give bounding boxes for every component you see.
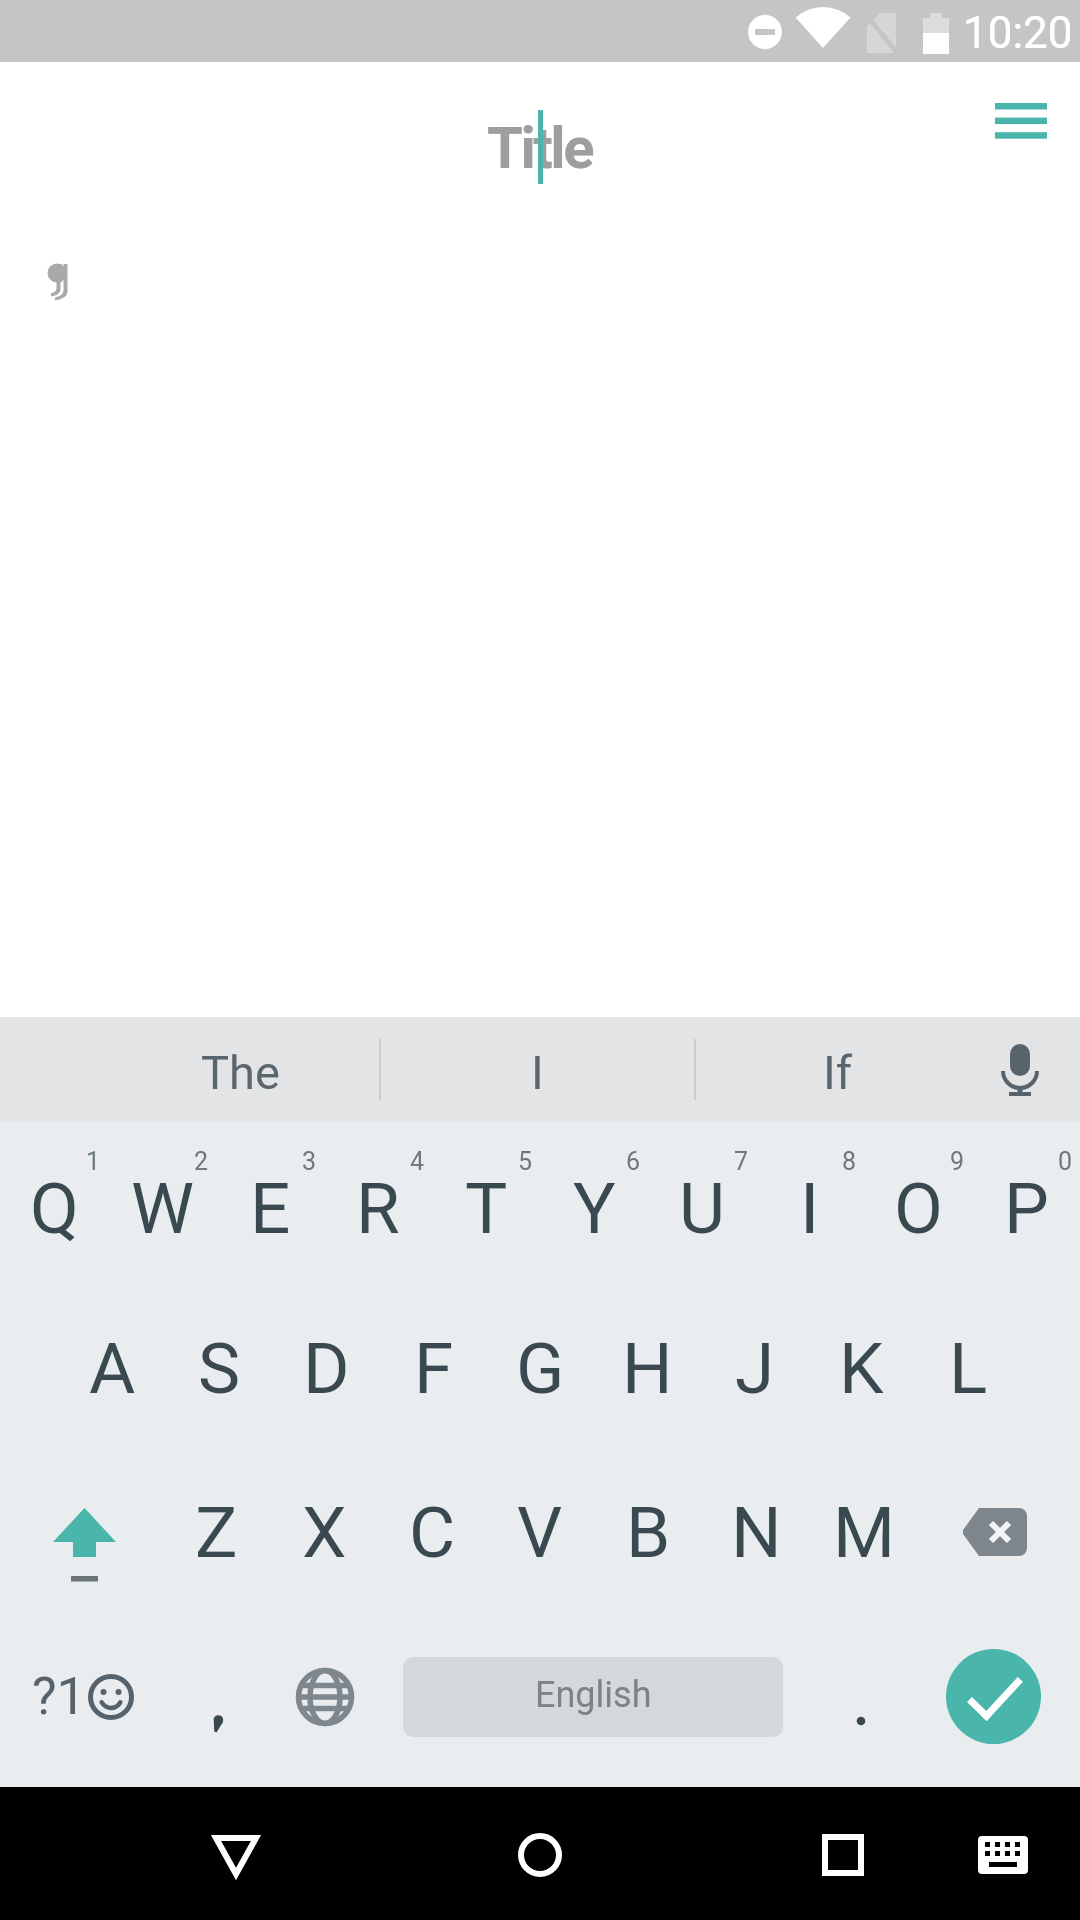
- staticText: X: [302, 1491, 347, 1574]
- button[interactable]: B: [594, 1454, 702, 1620]
- button[interactable]: S: [166, 1288, 273, 1454]
- staticText: English: [535, 1674, 652, 1716]
- staticText: O: [894, 1167, 943, 1250]
- button[interactable]: [946, 1649, 1041, 1744]
- staticText: Q: [30, 1167, 79, 1250]
- staticText: K: [839, 1327, 884, 1410]
- staticText: 0: [1058, 1147, 1073, 1176]
- button[interactable]: English: [403, 1657, 783, 1737]
- button[interactable]: T: [432, 1122, 540, 1288]
- staticText: I: [531, 1045, 544, 1100]
- button[interactable]: X: [270, 1454, 378, 1620]
- button[interactable]: [0, 1787, 360, 1920]
- button[interactable]: [918, 1454, 1080, 1620]
- staticText: I: [800, 1167, 820, 1250]
- staticText: 1: [86, 1147, 101, 1176]
- button[interactable]: U: [648, 1122, 756, 1288]
- staticText: 3: [302, 1147, 317, 1176]
- button[interactable]: The: [0, 1017, 380, 1122]
- staticText: M: [833, 1491, 895, 1574]
- staticText: 6: [626, 1147, 641, 1176]
- button[interactable]: [960, 1017, 1080, 1122]
- button[interactable]: I: [380, 1017, 695, 1122]
- staticText: 5: [518, 1147, 533, 1176]
- staticText: 4: [410, 1147, 425, 1176]
- button[interactable]: [720, 1787, 1080, 1920]
- button[interactable]: V: [486, 1454, 594, 1620]
- staticText: 9: [950, 1147, 965, 1176]
- staticText: H: [622, 1327, 673, 1410]
- staticText: W: [131, 1167, 194, 1250]
- button[interactable]: D: [273, 1288, 380, 1454]
- staticText: R: [356, 1167, 400, 1250]
- staticText: P: [1004, 1167, 1049, 1250]
- staticText: B: [626, 1491, 671, 1574]
- button[interactable]: K: [808, 1288, 915, 1454]
- button[interactable]: O: [864, 1122, 972, 1288]
- staticText: S: [198, 1327, 241, 1410]
- button[interactable]: [275, 1620, 375, 1787]
- button[interactable]: Y: [540, 1122, 648, 1288]
- button[interactable]: A: [58, 1288, 166, 1454]
- button[interactable]: N: [702, 1454, 810, 1620]
- button[interactable]: If: [695, 1017, 980, 1122]
- button[interactable]: [981, 88, 1061, 152]
- button[interactable]: [360, 1787, 720, 1920]
- staticText: N: [731, 1491, 782, 1574]
- staticText: A: [89, 1327, 136, 1410]
- staticText: V: [517, 1491, 563, 1574]
- button[interactable]: [164, 1620, 272, 1787]
- button[interactable]: Q: [0, 1122, 108, 1288]
- staticText: Z: [195, 1491, 238, 1574]
- button[interactable]: L: [915, 1288, 1022, 1454]
- button[interactable]: W: [108, 1122, 216, 1288]
- staticText: E: [250, 1167, 291, 1250]
- button[interactable]: Z: [162, 1454, 270, 1620]
- staticText: C: [409, 1491, 456, 1574]
- button[interactable]: J: [701, 1288, 808, 1454]
- staticText: ?1: [32, 1666, 86, 1727]
- staticText: 7: [734, 1147, 749, 1176]
- staticText: 2: [194, 1147, 209, 1176]
- staticText: If: [823, 1045, 853, 1100]
- button[interactable]: I: [756, 1122, 864, 1288]
- staticText: The: [201, 1045, 280, 1100]
- staticText: J: [735, 1327, 775, 1410]
- button[interactable]: [807, 1620, 915, 1787]
- staticText: U: [679, 1167, 726, 1250]
- staticText: T: [465, 1167, 508, 1250]
- staticText: 10:20: [963, 7, 1073, 59]
- staticText: F: [414, 1327, 454, 1410]
- staticText: G: [516, 1327, 565, 1410]
- staticText: L: [949, 1327, 988, 1410]
- button[interactable]: M: [810, 1454, 918, 1620]
- button[interactable]: [0, 1454, 162, 1620]
- staticText: 8: [842, 1147, 857, 1176]
- staticText: Title: [487, 114, 593, 182]
- button[interactable]: H: [594, 1288, 701, 1454]
- button[interactable]: ?1: [18, 1620, 148, 1787]
- button[interactable]: C: [378, 1454, 486, 1620]
- button[interactable]: P: [972, 1122, 1080, 1288]
- button[interactable]: R: [324, 1122, 432, 1288]
- button[interactable]: G: [487, 1288, 594, 1454]
- button[interactable]: F: [380, 1288, 487, 1454]
- staticText: Y: [573, 1167, 616, 1250]
- button[interactable]: E: [216, 1122, 324, 1288]
- staticText: D: [303, 1327, 350, 1410]
